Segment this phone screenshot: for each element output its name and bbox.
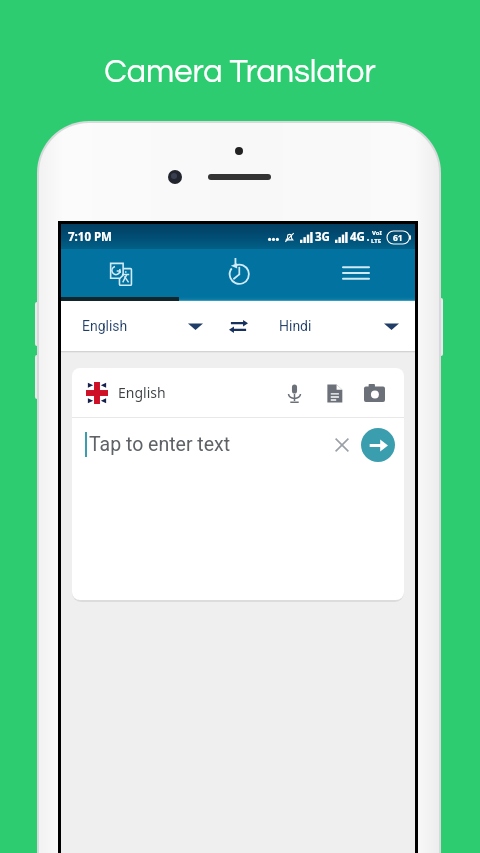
button[interactable]: English	[61, 301, 219, 351]
button[interactable]: Clear	[323, 426, 361, 464]
staticText: VoI	[372, 229, 382, 237]
button[interactable]: History	[179, 249, 297, 297]
staticText: English	[118, 383, 166, 402]
staticText: 7:10 PM	[68, 229, 112, 245]
button[interactable]: Voice input	[274, 373, 314, 413]
button[interactable]: Translate	[361, 428, 395, 462]
staticText: English	[82, 318, 128, 334]
button[interactable]: Camera	[354, 373, 394, 413]
button[interactable]: Menu	[297, 249, 415, 297]
staticText: 61	[393, 232, 403, 244]
button[interactable]: Translate	[61, 249, 179, 297]
staticText: Hindi	[279, 318, 312, 334]
staticText: Tap to enter text	[89, 433, 231, 456]
button[interactable]: Swap languages	[219, 306, 257, 346]
button[interactable]: Document	[314, 373, 354, 413]
button[interactable]: Hindi	[257, 301, 415, 351]
staticText: Camera Translator	[104, 55, 376, 88]
staticText: 3G	[315, 229, 330, 245]
staticText: LTE	[371, 237, 382, 245]
staticText: 4G	[350, 229, 365, 245]
